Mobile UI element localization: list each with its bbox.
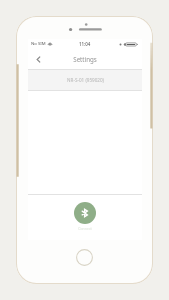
button[interactable]: Back [30, 51, 46, 67]
staticText: Settings [73, 55, 97, 63]
staticText: NR-S-01 (959020) [67, 77, 104, 83]
button[interactable]: Connect Bluetooth [74, 202, 96, 224]
staticText: Connect [78, 226, 92, 231]
staticText: No SIM [31, 41, 46, 47]
button[interactable]: NR-S-01 (959020) [28, 70, 142, 90]
staticText: 11:04 [79, 41, 91, 47]
